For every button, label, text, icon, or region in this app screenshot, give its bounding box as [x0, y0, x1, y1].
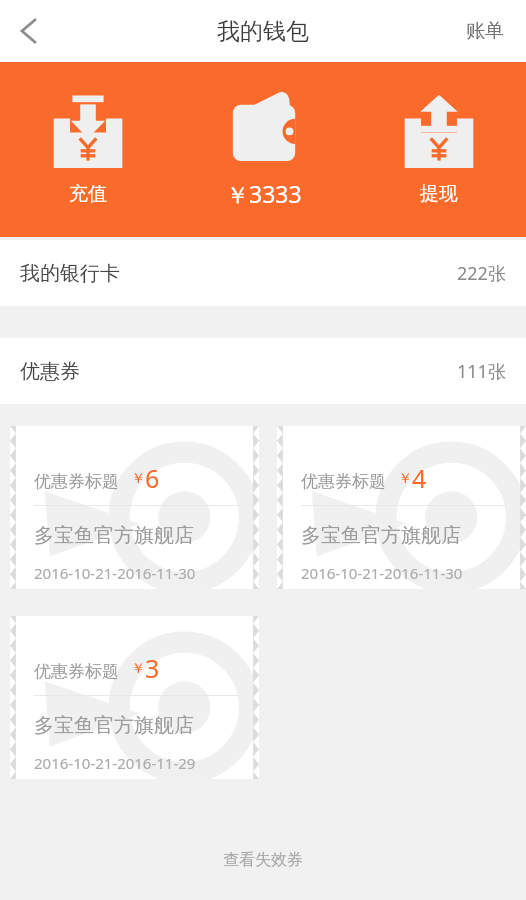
staticText: 提现	[420, 182, 458, 206]
button[interactable]: 优惠券标题	[10, 616, 259, 779]
staticText: 优惠券标题	[301, 471, 386, 492]
staticText: 2016-10-21-2016-11-29	[34, 753, 196, 773]
button[interactable]: Back	[0, 0, 58, 62]
staticText: 多宝鱼官方旗舰店	[34, 523, 194, 548]
staticText: ￥3333	[226, 178, 302, 209]
button[interactable]: 优惠券标题	[10, 426, 259, 589]
button[interactable]: 提现	[351, 62, 526, 237]
staticText: 多宝鱼官方旗舰店	[301, 523, 461, 548]
staticText: ￥	[131, 660, 145, 678]
staticText: 我的银行卡	[20, 261, 120, 286]
staticText: 2016-10-21-2016-11-30	[34, 563, 196, 583]
staticText: 多宝鱼官方旗舰店	[34, 713, 194, 738]
staticText: 我的钱包	[217, 17, 309, 46]
staticText: 优惠券	[20, 359, 80, 384]
staticText: ￥	[398, 470, 412, 488]
staticText: 充值	[69, 182, 107, 206]
button[interactable]: 账单	[444, 1, 526, 61]
staticText: 222张	[457, 261, 506, 286]
button[interactable]: 优惠券	[0, 338, 526, 404]
button[interactable]: 查看失效券	[0, 836, 526, 884]
staticText: 4	[412, 461, 427, 495]
button[interactable]: ￥3333	[176, 62, 351, 237]
staticText: 查看失效券	[223, 850, 303, 870]
button[interactable]: 充值	[0, 62, 176, 237]
staticText: 2016-10-21-2016-11-30	[301, 563, 463, 583]
button[interactable]: 优惠券标题	[277, 426, 526, 589]
staticText: 6	[145, 461, 160, 495]
button[interactable]: 我的银行卡	[0, 240, 526, 306]
staticText: 账单	[466, 19, 504, 43]
staticText: 3	[145, 651, 160, 685]
staticText: 优惠券标题	[34, 661, 119, 682]
staticText: 111张	[457, 359, 506, 384]
staticText: 优惠券标题	[34, 471, 119, 492]
staticText: ￥	[131, 470, 145, 488]
